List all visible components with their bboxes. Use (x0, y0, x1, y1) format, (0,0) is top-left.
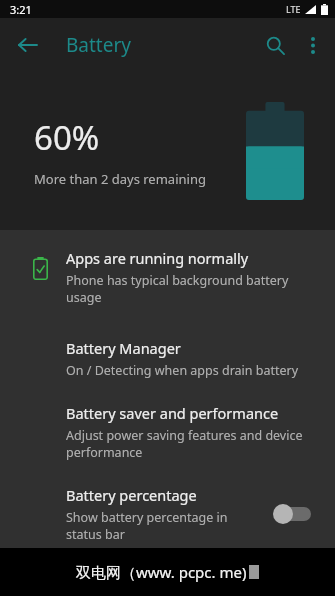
button[interactable]: Battery percentage toggle (273, 501, 319, 527)
staticText: Battery saver and performance (66, 403, 279, 423)
button[interactable]: Search (255, 25, 295, 65)
staticText: Show battery percentage in status bar (66, 509, 263, 543)
staticText: Apps are running normally (66, 248, 249, 268)
staticText: 3:21 (10, 2, 32, 17)
staticText: Battery Manager (66, 338, 181, 358)
button[interactable]: Battery percentage (0, 463, 335, 555)
button[interactable]: More options (295, 27, 331, 63)
staticText: 双电网（www. pcpc. me) (76, 562, 247, 582)
staticText: On / Detecting when apps drain battery (66, 362, 299, 379)
staticText: LTE (286, 3, 301, 15)
staticText: Battery (66, 32, 131, 58)
staticText: Battery percentage (66, 485, 197, 505)
button[interactable]: Battery Manager (0, 316, 335, 381)
button[interactable]: Back (8, 25, 48, 65)
staticText: Adjust power saving features and device … (66, 427, 311, 461)
staticText: More than 2 days remaining (34, 170, 206, 188)
staticText: Phone has typical background battery usa… (66, 272, 319, 306)
staticText: 60% (34, 115, 100, 160)
button[interactable]: Battery saver and performance (0, 381, 335, 463)
button[interactable]: Apps are running normally (0, 240, 335, 316)
